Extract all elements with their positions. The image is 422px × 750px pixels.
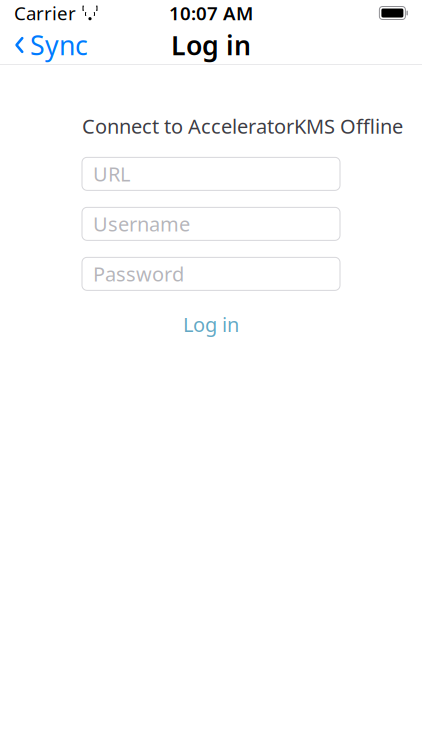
staticText: Log in bbox=[183, 311, 239, 338]
staticText: Password bbox=[93, 261, 184, 287]
staticText: URL bbox=[93, 161, 130, 187]
staticText: Username bbox=[93, 211, 190, 237]
staticText: Log in bbox=[171, 27, 251, 63]
button[interactable]: Password bbox=[82, 257, 340, 290]
button[interactable]: URL bbox=[82, 157, 340, 190]
staticText: Carrier bbox=[14, 1, 76, 25]
staticText: Sync bbox=[30, 27, 88, 63]
staticText: 10:07 AM bbox=[169, 1, 253, 25]
staticText: Connect to AcceleratorKMS Offline bbox=[82, 113, 403, 139]
button[interactable]: Sync bbox=[0, 21, 98, 69]
button[interactable]: Log in bbox=[82, 311, 340, 337]
button[interactable]: Username bbox=[82, 207, 340, 240]
